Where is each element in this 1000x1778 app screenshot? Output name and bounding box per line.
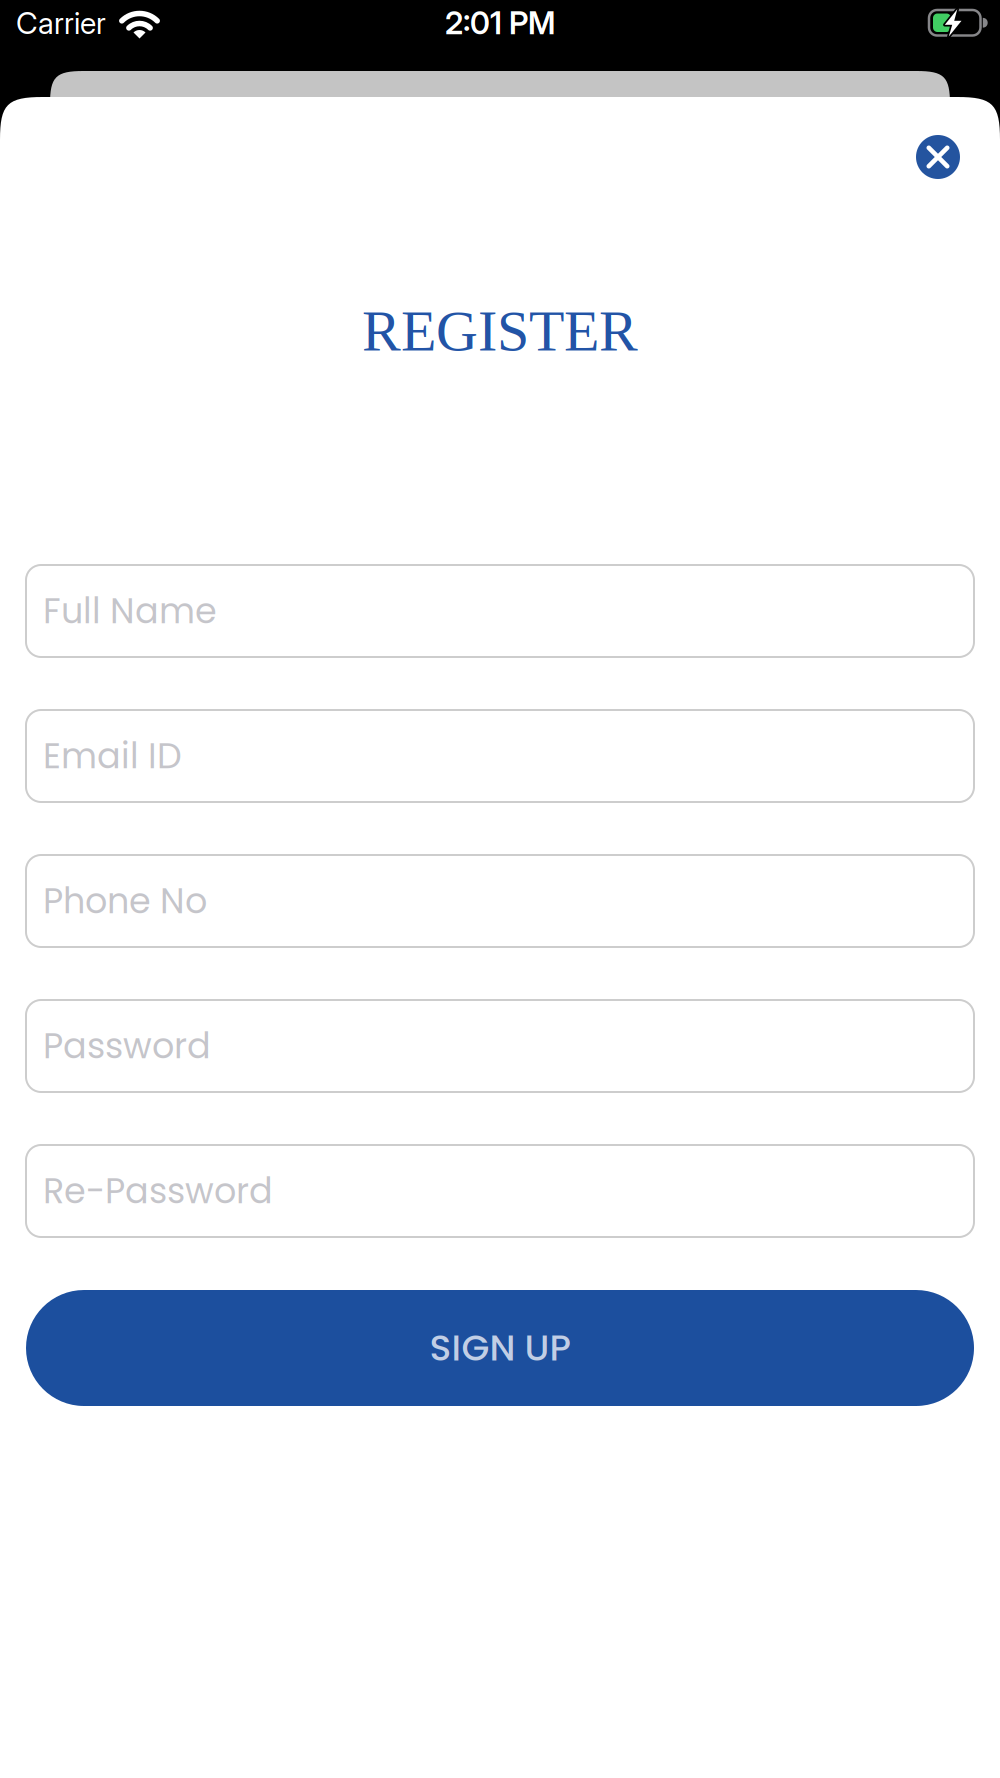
staticText: Re-Password bbox=[43, 1166, 273, 1215]
textField[interactable]: Phone No bbox=[43, 876, 974, 925]
staticText: Carrier bbox=[16, 5, 106, 41]
staticText: Full Name bbox=[43, 586, 217, 635]
button[interactable]: Close bbox=[916, 135, 960, 179]
staticText: Password bbox=[43, 1021, 211, 1070]
staticText: SIGN UP bbox=[429, 1323, 570, 1373]
staticText: Full Name bbox=[43, 586, 217, 635]
textField[interactable]: Email ID bbox=[43, 731, 974, 780]
staticText: Email ID bbox=[43, 731, 182, 780]
staticText: Password bbox=[43, 1021, 211, 1070]
staticText: REGISTER bbox=[362, 299, 638, 363]
button[interactable]: SIGN UP bbox=[26, 1290, 974, 1406]
staticText: Phone No bbox=[43, 876, 207, 925]
secureTextField[interactable]: Password bbox=[43, 1021, 974, 1070]
staticText: Email ID bbox=[43, 731, 182, 780]
staticText: Re-Password bbox=[43, 1166, 273, 1215]
secureTextField[interactable]: Re-Password bbox=[43, 1166, 974, 1215]
textField[interactable]: Full Name bbox=[43, 586, 974, 635]
staticText: 2:01 PM bbox=[445, 4, 555, 42]
staticText: Phone No bbox=[43, 876, 207, 925]
